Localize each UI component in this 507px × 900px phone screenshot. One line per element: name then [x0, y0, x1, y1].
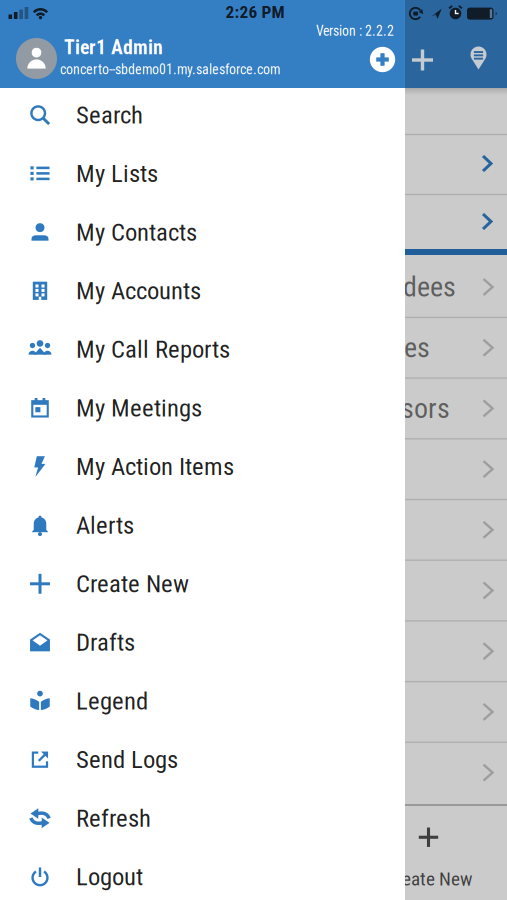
- staticText: Sponsors: [344, 392, 450, 425]
- button[interactable]: My Meetings: [0, 379, 405, 437]
- staticText: Attendees: [344, 271, 456, 303]
- staticText: Version : 2.2.2: [316, 23, 394, 39]
- button[interactable]: Create New: [385, 827, 472, 890]
- staticText: Drafts: [76, 628, 135, 657]
- staticText: Send Logs: [76, 745, 178, 774]
- button[interactable]: Refresh: [0, 789, 405, 847]
- staticText: Tier1 Admin: [64, 36, 163, 59]
- staticText: My Accounts: [76, 276, 201, 305]
- button[interactable]: Map pin: [470, 46, 486, 69]
- button[interactable]: Logout: [0, 847, 405, 900]
- button[interactable]: Send Logs: [0, 730, 405, 789]
- button[interactable]: Create: [370, 47, 395, 72]
- staticText: Legend: [76, 686, 148, 715]
- button[interactable]: Drafts: [0, 613, 405, 672]
- button[interactable]: My Call Reports: [0, 320, 405, 379]
- button[interactable]: My Action Items: [0, 437, 405, 496]
- staticText: Create New: [385, 868, 472, 890]
- button[interactable]: Profile: [16, 38, 57, 79]
- staticText: 2:26 PM: [225, 2, 284, 22]
- staticText: Search: [76, 100, 143, 129]
- button[interactable]: My Lists: [0, 144, 405, 203]
- staticText: My Meetings: [76, 393, 202, 422]
- button[interactable]: Alerts: [0, 496, 405, 554]
- staticText: Logout: [76, 862, 143, 891]
- button[interactable]: My Contacts: [0, 203, 405, 261]
- staticText: Alerts: [76, 511, 134, 540]
- staticText: Refresh: [76, 804, 151, 833]
- staticText: My Lists: [76, 159, 158, 188]
- button[interactable]: Legend: [0, 672, 405, 730]
- button[interactable]: Add: [410, 48, 434, 72]
- staticText: Invitees: [344, 331, 430, 364]
- staticText: concerto--sbdemo01.my.salesforce.com: [60, 61, 280, 78]
- staticText: My Contacts: [76, 218, 197, 247]
- staticText: Create New: [76, 569, 189, 598]
- button[interactable]: Search: [0, 86, 405, 144]
- button[interactable]: Create New: [0, 554, 405, 613]
- button[interactable]: My Accounts: [0, 261, 405, 320]
- staticText: My Call Reports: [76, 335, 230, 364]
- staticText: My Action Items: [76, 452, 234, 481]
